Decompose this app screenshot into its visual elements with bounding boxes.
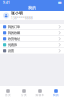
button[interactable]: 设置: [0, 48, 64, 54]
staticText: 我的: [28, 5, 36, 10]
staticText: 设置: [8, 49, 14, 53]
staticText: 张小明: [11, 11, 23, 16]
button[interactable]: 首页: [0, 86, 16, 100]
staticText: 138****8888: [11, 16, 33, 20]
staticText: 分类: [21, 93, 27, 97]
button[interactable]: 我的: [48, 86, 64, 100]
staticText: 购物车: [35, 93, 44, 97]
button[interactable]: 优惠券: [0, 42, 64, 48]
staticText: 我的收藏: [8, 31, 20, 35]
button[interactable]: 购物车: [32, 86, 48, 100]
button[interactable]: 我的订单: [0, 24, 64, 30]
staticText: 9:41: [3, 0, 10, 4]
staticText: 收货地址: [8, 37, 20, 41]
staticText: 我的: [53, 93, 59, 97]
staticText: 优惠券: [8, 43, 17, 47]
staticText: 我的订单: [8, 25, 20, 29]
button[interactable]: 我的收藏: [0, 30, 64, 36]
staticText: 首页: [5, 93, 11, 97]
staticText: ▮▮▮: [58, 1, 61, 4]
button[interactable]: 收货地址: [0, 36, 64, 42]
button[interactable]: 张小明: [0, 11, 64, 20]
button[interactable]: 分类: [16, 86, 32, 100]
